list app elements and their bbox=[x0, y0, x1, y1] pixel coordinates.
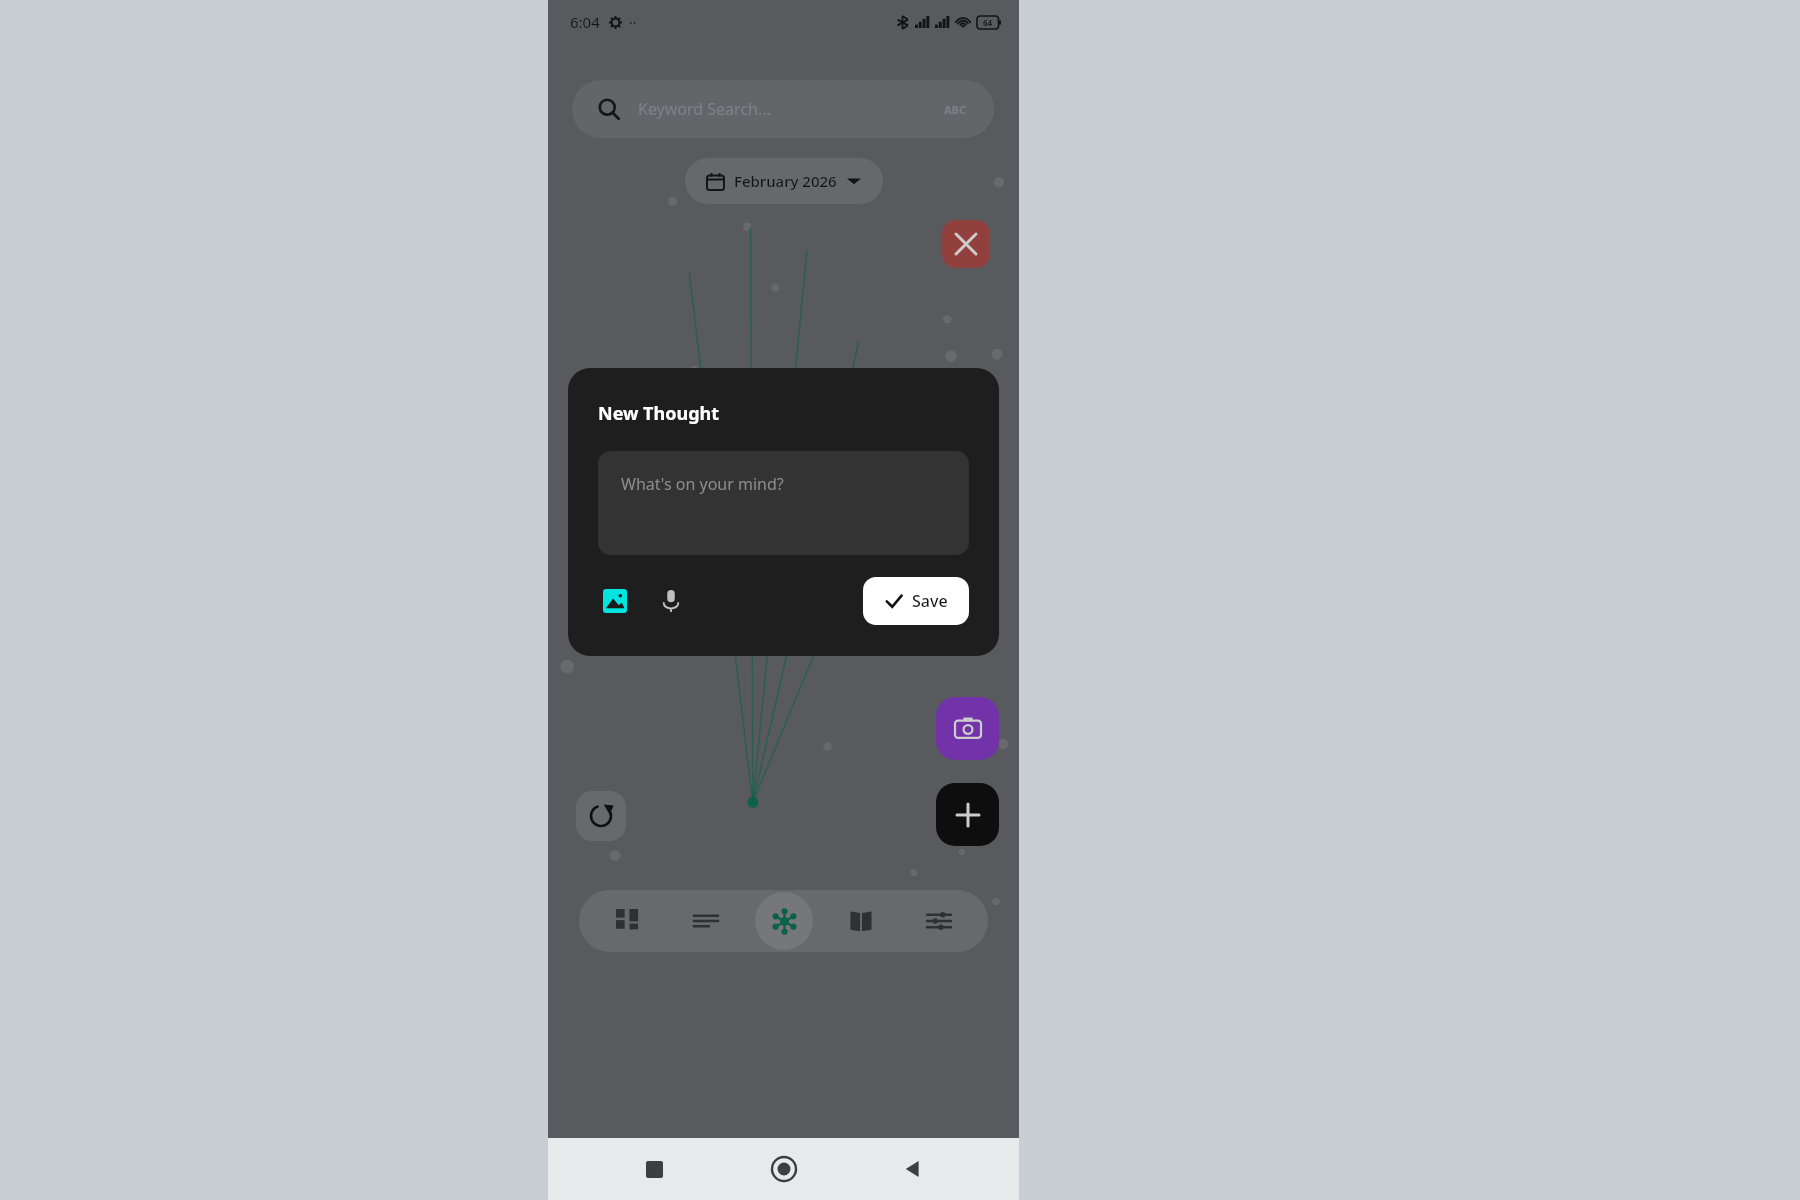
staticText: February 2026 bbox=[734, 171, 837, 191]
button[interactable]: February 2026 bbox=[685, 158, 883, 204]
button[interactable]: Back bbox=[889, 1145, 937, 1193]
button[interactable]: Recents bbox=[630, 1145, 678, 1193]
button[interactable]: Voice input bbox=[654, 584, 688, 618]
button[interactable]: Home bbox=[760, 1145, 808, 1193]
button[interactable]: Keyword Search... bbox=[572, 80, 994, 138]
button[interactable]: Save bbox=[863, 577, 969, 625]
staticText: What's on your mind? bbox=[621, 473, 784, 495]
button[interactable]: Refresh bbox=[576, 791, 626, 841]
button[interactable]: List bbox=[677, 892, 735, 950]
button[interactable]: Close bbox=[942, 220, 990, 268]
staticText: Save bbox=[912, 590, 948, 612]
button[interactable]: Dashboard bbox=[599, 892, 657, 950]
staticText: New Thought bbox=[598, 401, 720, 426]
staticText: ·· bbox=[629, 13, 637, 32]
button[interactable]: Add bbox=[936, 783, 999, 846]
staticText: ABC bbox=[944, 102, 966, 117]
staticText: 64 bbox=[983, 17, 993, 28]
button[interactable]: Settings bbox=[910, 892, 968, 950]
button[interactable]: Attach image bbox=[598, 584, 632, 618]
button[interactable]: Graph bbox=[755, 892, 813, 950]
button[interactable]: What's on your mind? bbox=[598, 451, 969, 555]
staticText: Keyword Search... bbox=[638, 98, 771, 120]
staticText: 6:04 bbox=[570, 12, 600, 32]
button[interactable]: Library bbox=[832, 892, 890, 950]
button[interactable]: Camera bbox=[936, 697, 999, 760]
